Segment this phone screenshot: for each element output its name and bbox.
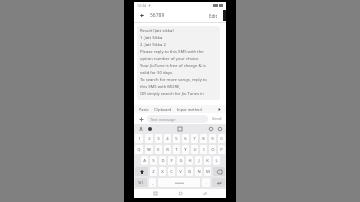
button[interactable]: Add attachment [137, 115, 145, 123]
staticText: J [198, 158, 200, 164]
button[interactable]: U [191, 145, 198, 154]
button[interactable]: P [218, 145, 225, 154]
button[interactable]: Clipboard [153, 107, 173, 112]
staticText: , [152, 180, 154, 186]
button[interactable]: 5 [173, 134, 180, 143]
button[interactable]: H [186, 156, 193, 165]
staticText: M [206, 169, 210, 175]
button[interactable]: A [141, 156, 148, 165]
button[interactable]: K [204, 156, 211, 165]
button[interactable]: J [195, 156, 202, 165]
button[interactable]: E [155, 145, 162, 154]
button[interactable]: Space [158, 178, 200, 187]
staticText: 6 [184, 136, 187, 142]
staticText: 9 [211, 136, 214, 142]
staticText: G [179, 158, 183, 164]
button[interactable]: I [200, 145, 207, 154]
staticText: L [215, 158, 218, 164]
staticText: K [206, 158, 209, 164]
button[interactable]: Back [138, 11, 147, 20]
staticText: S [152, 158, 155, 164]
button[interactable]: N [195, 167, 202, 176]
button[interactable]: Shift [135, 167, 148, 176]
staticText: OR simply search for Jio Tunes in [140, 91, 204, 97]
button[interactable]: F [168, 156, 175, 165]
button[interactable]: Z [150, 167, 157, 176]
button[interactable]: 1 [135, 134, 143, 143]
button[interactable]: More [217, 107, 222, 112]
button[interactable]: O [209, 145, 216, 154]
button[interactable]: X [159, 167, 166, 176]
button[interactable]: 6 [182, 134, 189, 143]
button[interactable]: Recents [152, 190, 159, 197]
staticText: Edit [209, 13, 218, 19]
button[interactable]: Edit [207, 12, 220, 20]
staticText: Please reply to this SMS with the [140, 49, 204, 55]
staticText: F [170, 158, 173, 164]
button[interactable]: Home [177, 190, 184, 197]
button[interactable]: C [168, 167, 175, 176]
button[interactable]: Q [135, 145, 143, 154]
staticText: 12:34 [137, 3, 146, 8]
staticText: O [211, 147, 215, 153]
staticText: this SMS with MORE, [140, 84, 181, 90]
staticText: Y [184, 147, 187, 153]
button[interactable]: M [204, 167, 211, 176]
staticText: Send [212, 116, 222, 121]
button[interactable]: Emoji [146, 125, 153, 132]
staticText: 5 [175, 136, 178, 142]
button[interactable]: V [177, 167, 184, 176]
button[interactable]: 9 [209, 134, 216, 143]
staticText: Result (Jatt sikka) [140, 28, 174, 34]
button[interactable]: T [173, 145, 180, 154]
button[interactable]: , [149, 178, 156, 187]
staticText: X [161, 169, 164, 175]
staticText: . [205, 180, 207, 186]
button[interactable]: Sticker [176, 125, 183, 132]
button[interactable]: Back [201, 190, 208, 197]
staticText: !#1 [138, 180, 144, 185]
staticText: To search for more songs, reply to [140, 77, 207, 83]
button[interactable]: Enter [212, 178, 225, 187]
staticText: 1 [138, 136, 141, 142]
button[interactable]: 0 [218, 134, 225, 143]
staticText: I [203, 147, 205, 153]
button[interactable]: 3 [155, 134, 162, 143]
button[interactable]: Paste [138, 107, 150, 112]
button[interactable]: L [213, 156, 220, 165]
staticText: option number of your choice. [140, 56, 200, 62]
button[interactable]: Input method [176, 107, 203, 112]
button[interactable]: Settings [207, 125, 214, 132]
staticText: T [175, 147, 178, 153]
button[interactable]: 8 [200, 134, 207, 143]
button[interactable]: 4 [164, 134, 171, 143]
staticText: Paste [139, 107, 149, 112]
staticText: R [166, 147, 169, 153]
button[interactable]: D [159, 156, 166, 165]
button[interactable]: 7 [191, 134, 198, 143]
button[interactable]: Symbols [135, 178, 147, 187]
button[interactable]: Text style [137, 125, 144, 132]
button[interactable]: Result (Jatt sikka) [137, 26, 220, 100]
staticText: 2 [148, 136, 151, 142]
staticText: Z [152, 169, 155, 175]
button[interactable]: Backspace [213, 167, 225, 176]
staticText: N [197, 169, 201, 175]
button[interactable]: Send [211, 116, 223, 121]
button[interactable]: Text message [147, 115, 208, 123]
button[interactable]: R [164, 145, 171, 154]
button[interactable]: More options [216, 125, 223, 132]
staticText: U [193, 147, 197, 153]
button[interactable]: 2 [145, 134, 153, 143]
staticText: Text message [150, 117, 176, 122]
button[interactable]: B [186, 167, 193, 176]
staticText: A [143, 158, 146, 164]
button[interactable]: S [150, 156, 157, 165]
staticText: Q [137, 147, 141, 153]
button[interactable]: Y [182, 145, 189, 154]
button[interactable]: G [177, 156, 184, 165]
button[interactable]: W [145, 145, 153, 154]
staticText: valid for 30 days. [140, 70, 174, 76]
staticText: H [188, 158, 192, 164]
